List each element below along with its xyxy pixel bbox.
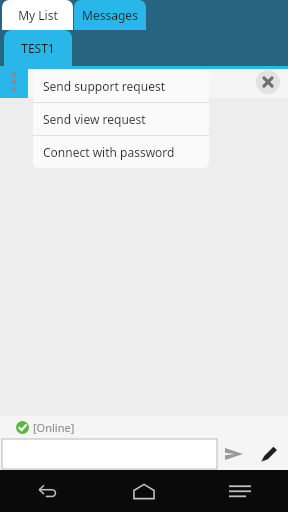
button[interactable]: Messages	[74, 0, 146, 30]
button[interactable]: Send view request	[33, 103, 209, 135]
button[interactable]: More options	[0, 66, 28, 98]
staticText: TEST1	[21, 40, 55, 56]
button[interactable]: Compose	[251, 438, 287, 470]
button[interactable]: Send support request	[33, 70, 209, 102]
staticText: Send view request	[43, 111, 146, 127]
button[interactable]: Back	[0, 470, 96, 512]
button[interactable]: Send	[217, 438, 251, 470]
button[interactable]: Home	[96, 470, 192, 512]
button[interactable]: My List	[2, 0, 73, 30]
staticText: Messages	[82, 7, 138, 23]
staticText: Connect with password	[43, 144, 175, 160]
button[interactable]: Connect with password	[33, 136, 209, 168]
button[interactable]: TEST1	[4, 30, 72, 66]
staticText: Send support request	[43, 78, 165, 94]
button[interactable]: Close	[256, 70, 280, 94]
staticText: My List	[18, 7, 58, 23]
button[interactable]	[2, 439, 217, 469]
button[interactable]: Recent apps	[192, 470, 288, 512]
staticText: [Online]	[33, 420, 75, 435]
